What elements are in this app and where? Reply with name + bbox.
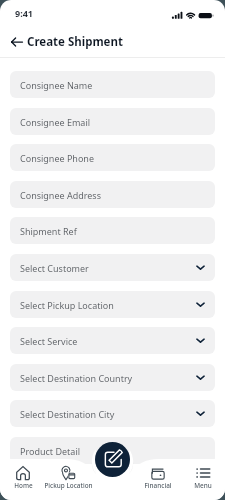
button[interactable]: Menu [180, 459, 225, 500]
staticText: Select Customer [20, 262, 89, 274]
staticText: Consignee Email [20, 116, 91, 128]
staticText: Financial [144, 481, 172, 490]
button[interactable]: Consignee Email [10, 108, 215, 135]
staticText: 9:41 [15, 7, 33, 19]
button[interactable]: Shipment Ref [10, 217, 215, 244]
staticText: Select Service [20, 335, 78, 347]
button[interactable]: Financial [135, 459, 180, 500]
staticText: Pickup Location [44, 481, 93, 490]
button[interactable]: Create [95, 442, 130, 477]
staticText: Consignee Address [20, 189, 101, 201]
button[interactable]: Select Pickup Location [10, 291, 215, 318]
button[interactable]: Back [9, 34, 25, 50]
button[interactable]: Select Customer [10, 254, 215, 281]
button[interactable]: Home [0, 459, 45, 500]
staticText: Consignee Name [20, 79, 93, 91]
staticText: Menu [194, 481, 212, 490]
staticText: Product Detail [20, 445, 81, 457]
button[interactable]: Pickup Location [45, 459, 90, 500]
staticText: Select Pickup Location [20, 299, 114, 311]
button[interactable]: Consignee Address [10, 181, 215, 208]
button[interactable]: Consignee Name [10, 71, 215, 98]
staticText: Shipment Ref [20, 225, 77, 237]
staticText: Select Destination City [20, 408, 115, 420]
staticText: Home [14, 481, 33, 490]
button[interactable]: Select Destination Country [10, 364, 215, 391]
button[interactable]: Select Destination City [10, 400, 215, 427]
button[interactable]: Product Detail [10, 437, 215, 464]
button[interactable]: Select Service [10, 327, 215, 354]
staticText: Create Shipment [27, 34, 123, 50]
button[interactable]: Consignee Phone [10, 144, 215, 171]
staticText: Consignee Phone [20, 152, 95, 164]
staticText: Select Destination Country [20, 372, 133, 384]
